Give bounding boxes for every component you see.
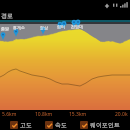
staticText: 5.6km	[2, 111, 17, 118]
staticText: 고도	[20, 121, 32, 129]
other: Elevation and speed chart	[0, 24, 130, 110]
staticText: 15.3km	[69, 111, 87, 118]
staticText: 휴게소	[13, 25, 25, 30]
staticText: 정상	[40, 25, 48, 30]
button[interactable]: 고도	[9, 121, 33, 129]
staticText: 경로	[1, 12, 13, 20]
staticText: 20.0k	[115, 111, 128, 118]
staticText: 웨이포인트	[90, 121, 120, 129]
staticText: 쉼터	[57, 24, 65, 29]
button[interactable]: 웨이포인트	[79, 121, 121, 129]
button[interactable]: 속도	[44, 121, 68, 129]
staticText: 전망대	[71, 24, 83, 29]
staticText: 10.8km	[35, 111, 53, 118]
staticText: 속도	[55, 121, 67, 129]
staticText: 출발	[1, 26, 9, 31]
